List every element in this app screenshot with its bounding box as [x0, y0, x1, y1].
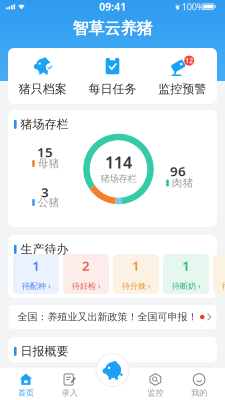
staticText: 1: [32, 257, 40, 274]
staticText: 猪场存栏: [21, 117, 69, 132]
staticText: 15: [37, 143, 53, 161]
staticText: 待妊检 ›: [72, 280, 100, 291]
staticText: 公猪: [38, 196, 60, 209]
staticText: 12: [185, 56, 193, 65]
staticText: 生产待办: [21, 242, 69, 257]
staticText: 首页: [18, 388, 34, 398]
button[interactable]: 猪只档案: [8, 56, 78, 96]
staticText: 100%: [181, 0, 204, 13]
button[interactable]: [96, 353, 129, 386]
staticText: 录入: [62, 388, 78, 398]
staticText: 待出栏 ›: [222, 280, 225, 291]
button[interactable]: 首页: [4, 373, 48, 398]
staticText: 待断奶 ›: [172, 280, 200, 291]
staticText: 我的: [191, 388, 207, 398]
staticText: 2: [82, 257, 90, 274]
staticText: 1: [182, 257, 190, 274]
button[interactable]: 12: [147, 56, 217, 96]
staticText: 日报概要: [21, 344, 69, 359]
staticText: 09:41: [99, 0, 126, 14]
button[interactable]: 每日任务: [78, 56, 147, 96]
button[interactable]: 监控: [133, 373, 177, 398]
staticText: 待配种 ›: [22, 280, 50, 291]
button[interactable]: 全国：养殖业又出新政策！全国可申报！: [8, 305, 216, 329]
staticText: 肉猪: [172, 176, 194, 189]
button[interactable]: 2: [63, 254, 109, 294]
staticText: 96: [170, 162, 186, 180]
staticText: 监控预警: [158, 82, 206, 96]
staticText: 114: [105, 152, 132, 173]
button[interactable]: 录入: [48, 373, 92, 398]
staticText: 3: [41, 183, 49, 201]
staticText: 母猪: [38, 157, 60, 170]
button[interactable]: 1: [213, 254, 225, 294]
button[interactable]: 我的: [177, 373, 221, 398]
button[interactable]: 1: [13, 254, 59, 294]
staticText: 每日任务: [88, 82, 136, 96]
staticText: 智草云养猪: [72, 19, 152, 38]
staticText: 猪场存栏: [100, 173, 136, 184]
staticText: 监控: [147, 388, 163, 398]
staticText: 猪只档案: [19, 82, 67, 96]
staticText: 1: [132, 257, 140, 274]
button[interactable]: 1: [163, 254, 209, 294]
button[interactable]: 1: [113, 254, 159, 294]
staticText: 全国：养殖业又出新政策！全国可申报！: [17, 311, 197, 323]
staticText: 待分娩 ›: [122, 280, 150, 291]
